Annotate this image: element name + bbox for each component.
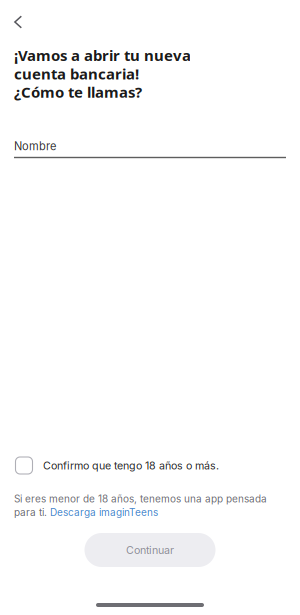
staticText: Si eres menor de 18 años, tenemos una ap… [14,493,267,505]
staticText: Confirmo que tengo 18 años o más. [43,459,219,472]
staticText: Nombre [14,139,56,153]
staticText: cuenta bancaria! [14,63,139,84]
staticText: ¡Vamos a abrir tu nueva [14,45,191,65]
staticText: Descarga imaginTeens [50,506,158,518]
button[interactable]: Back [0,9,40,35]
button[interactable]: Descarga imaginTeens [50,506,158,518]
button[interactable]: Continuar [84,533,215,567]
staticText: para ti. [14,506,47,518]
staticText: ¿Cómo te llamas? [14,82,142,102]
staticText: Continuar [126,543,174,556]
button[interactable]: Nombre [0,140,300,158]
button[interactable]: Confirmo que tengo 18 años o más. [0,457,300,477]
